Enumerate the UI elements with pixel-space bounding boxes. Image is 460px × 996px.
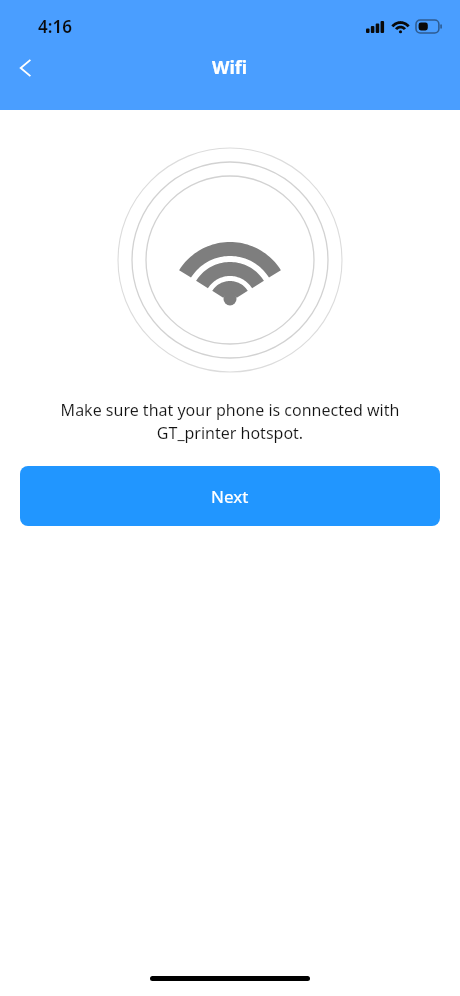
- staticText: Wifi: [212, 55, 248, 80]
- button[interactable]: Back: [0, 42, 52, 94]
- staticText: 4:16: [38, 15, 72, 38]
- button[interactable]: Next: [20, 466, 440, 526]
- staticText: Make sure that your phone is connected w…: [46, 399, 414, 444]
- staticText: Next: [211, 485, 249, 508]
